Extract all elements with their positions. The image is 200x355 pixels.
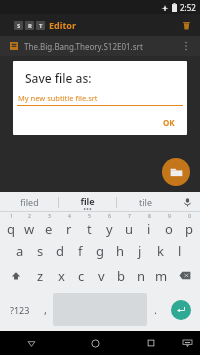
button[interactable]: k <box>150 238 170 263</box>
staticText: 1 <box>10 213 13 220</box>
button[interactable]: ?123 <box>2 290 37 329</box>
button[interactable]: v <box>91 263 111 288</box>
staticText: 2:52 <box>180 2 196 13</box>
button[interactable]: Backspace <box>171 263 199 288</box>
staticText: t <box>87 220 92 238</box>
staticText: d <box>56 242 64 260</box>
staticText: i <box>147 220 151 238</box>
staticText: q <box>7 220 15 238</box>
staticText: e <box>45 220 53 238</box>
button[interactable]: More options <box>178 38 194 54</box>
staticText: u <box>125 220 134 238</box>
staticText: file <box>80 195 95 207</box>
staticText: h <box>116 242 125 260</box>
button[interactable]: file <box>59 192 116 212</box>
staticText: , <box>44 302 47 317</box>
button[interactable]: f <box>70 238 90 263</box>
button[interactable]: 2 <box>20 212 39 238</box>
staticText: filed <box>20 196 39 208</box>
button[interactable]: j <box>130 238 150 263</box>
button[interactable]: 9 <box>159 212 179 238</box>
button[interactable]: Open folder <box>162 158 190 186</box>
button[interactable]: 8 <box>139 212 159 238</box>
button[interactable]: n <box>131 263 151 288</box>
staticText: a <box>16 242 24 260</box>
staticText: T <box>39 22 43 30</box>
button[interactable]: Recent apps <box>127 331 174 355</box>
staticText: p <box>185 220 193 238</box>
button[interactable]: l <box>170 238 190 263</box>
staticText: w <box>24 220 35 238</box>
button[interactable]: z <box>30 263 51 288</box>
staticText: 5 <box>88 213 91 220</box>
staticText: b <box>117 267 125 285</box>
button[interactable]: Enter <box>171 300 191 320</box>
button[interactable]: 1 <box>1 212 20 238</box>
staticText: Editor <box>49 19 76 31</box>
button[interactable]: Voice input <box>174 192 200 212</box>
staticText: m <box>155 267 168 285</box>
staticText: o <box>165 220 173 238</box>
staticText: ?123 <box>10 304 30 316</box>
staticText: l <box>178 242 182 260</box>
button[interactable]: h <box>110 238 130 263</box>
staticText: 8 <box>148 213 151 220</box>
staticText: y <box>106 220 113 238</box>
button[interactable]: filed <box>0 192 58 212</box>
button[interactable]: 3 <box>39 212 59 238</box>
staticText: 4 <box>68 213 71 220</box>
button[interactable]: Shift <box>1 263 30 288</box>
staticText: k <box>157 242 164 260</box>
staticText: f <box>78 242 83 260</box>
button[interactable]: g <box>90 238 110 263</box>
staticText: 9 <box>168 213 171 220</box>
button[interactable]: Delete <box>179 18 193 32</box>
button[interactable]: c <box>71 263 91 288</box>
staticText: 2 <box>28 213 31 220</box>
staticText: 6 <box>108 213 111 220</box>
staticText: The.Big.Bang.Theory.S12E01.srt <box>24 41 143 52</box>
button[interactable]: b <box>111 263 131 288</box>
button[interactable]: 0 <box>179 212 199 238</box>
button[interactable]: Home <box>63 331 127 355</box>
staticText: 7 <box>128 213 131 220</box>
staticText: r <box>66 220 72 238</box>
button[interactable]: Comma <box>37 290 53 329</box>
button[interactable]: Period <box>147 290 163 329</box>
staticText: S <box>17 22 21 30</box>
staticText: 3 <box>48 213 51 220</box>
staticText: x <box>58 267 65 285</box>
button[interactable]: a <box>10 238 30 263</box>
staticText: c <box>78 267 85 285</box>
staticText: g <box>96 242 104 260</box>
staticText: R <box>28 22 32 30</box>
button[interactable]: The.Big.Bang.Theory.S12E01.srt <box>0 36 200 56</box>
staticText: Save file as: <box>25 70 92 86</box>
staticText: . <box>154 302 157 317</box>
button[interactable]: m <box>151 263 171 288</box>
button[interactable]: 5 <box>79 212 99 238</box>
staticText: v <box>98 267 105 285</box>
button[interactable]: 7 <box>119 212 139 238</box>
staticText: My new subtitle file.srt <box>18 93 98 103</box>
staticText: s <box>37 242 44 260</box>
button[interactable]: 4 <box>59 212 79 238</box>
staticText: n <box>137 267 146 285</box>
staticText: 0 <box>188 213 191 220</box>
button[interactable]: tile <box>117 192 174 212</box>
button[interactable]: d <box>50 238 70 263</box>
staticText: OK <box>163 117 175 128</box>
button[interactable]: x <box>51 263 71 288</box>
button[interactable]: s <box>30 238 50 263</box>
staticText: tile <box>139 196 152 208</box>
button[interactable]: Hide keyboard <box>174 331 200 355</box>
button[interactable]: Back <box>0 331 63 355</box>
staticText: j <box>138 242 142 260</box>
staticText: z <box>37 267 44 285</box>
button[interactable]: 6 <box>99 212 119 238</box>
button[interactable]: OK <box>151 112 187 133</box>
